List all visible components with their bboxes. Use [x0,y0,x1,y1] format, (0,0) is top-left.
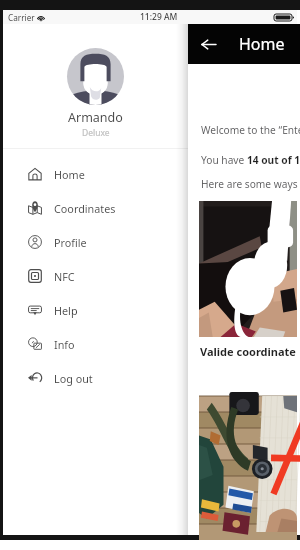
button[interactable]: Help [3,293,188,327]
staticText: Deluxe [82,127,110,139]
staticText: NFC [54,269,75,284]
staticText: Welcome to the “Enterprise” App [201,123,300,137]
staticText: Armando [68,109,123,126]
button[interactable]: Log out [3,361,188,395]
button[interactable]: Home [3,157,188,191]
staticText: Coordinates [54,201,116,216]
button[interactable]: Back [197,24,219,64]
staticText: Carrier [8,12,35,23]
button[interactable]: Profile [3,225,188,259]
staticText: Profile [54,235,87,250]
button[interactable]: NFC [3,259,188,293]
staticText: Home [239,33,285,55]
staticText: You have 14 out of 100 points [201,153,300,167]
staticText: Here are some ways to get more [201,177,300,191]
staticText: Info [54,337,75,352]
staticText: Valide coordinate [200,344,296,359]
button[interactable]: Info [3,327,188,361]
staticText: 11:29 AM [140,11,178,23]
button[interactable]: Coordinates [3,191,188,225]
staticText: Help [54,303,78,318]
staticText: Home [54,167,85,182]
staticText: Log out [54,371,93,386]
